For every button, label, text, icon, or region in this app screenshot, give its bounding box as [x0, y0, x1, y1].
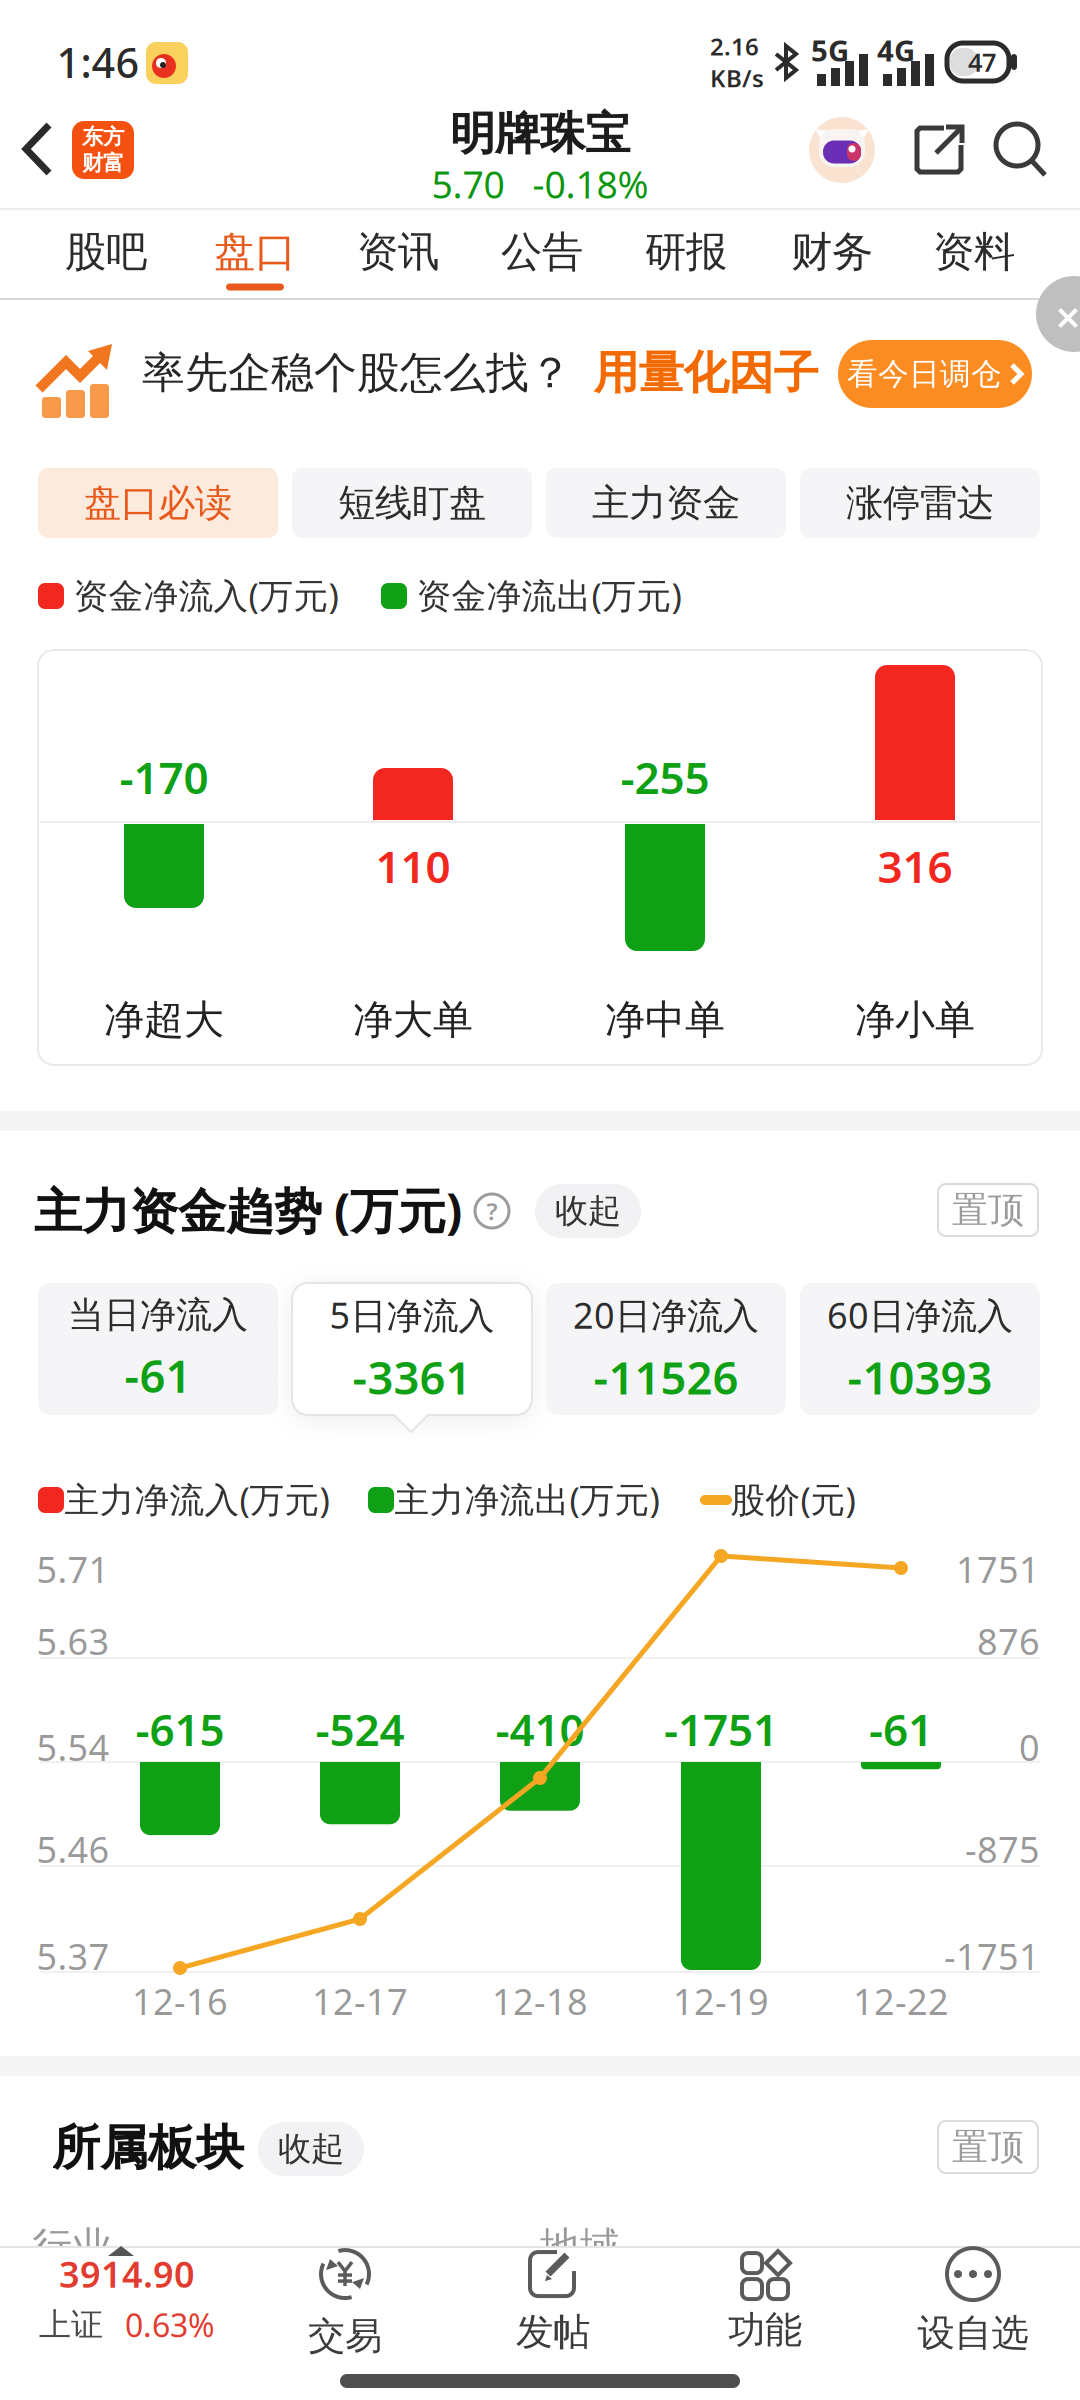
staticText: -875 — [965, 1825, 1040, 1873]
staticText: -524 — [315, 1700, 404, 1758]
staticText: -615 — [135, 1700, 224, 1758]
staticText: -11526 — [593, 1347, 738, 1407]
button[interactable]: 收起 — [258, 2122, 364, 2176]
staticText: -61 — [124, 1345, 191, 1405]
staticText: 5.71 — [36, 1545, 109, 1593]
button[interactable]: 60日净流入 — [800, 1283, 1040, 1415]
staticText: 盘口必读 — [84, 480, 232, 526]
staticText: ? — [486, 1195, 497, 1227]
staticText: 资金净流入(万元) — [73, 572, 338, 618]
staticText: 5.46 — [36, 1825, 109, 1873]
staticText: 资金净流出(万元) — [416, 572, 681, 618]
button[interactable]: 当日净流入 — [38, 1283, 278, 1415]
staticText: 看今日调仓 — [847, 355, 1002, 393]
staticText: 净大单 — [353, 995, 473, 1044]
button[interactable]: 资料 — [933, 227, 1015, 277]
staticText: 发帖 — [516, 2309, 590, 2355]
staticText: -0.18% — [532, 159, 648, 209]
staticText: 行业 — [32, 2222, 112, 2271]
button[interactable]: 股吧 — [65, 227, 147, 277]
staticText: 3914.90 — [59, 2250, 195, 2298]
staticText: -3361 — [352, 1347, 471, 1407]
staticText: 12-18 — [492, 1977, 588, 2025]
button[interactable]: 短线盯盘 — [292, 468, 532, 538]
staticText: 0 — [1019, 1723, 1040, 1771]
button[interactable]: Close — [1036, 276, 1080, 352]
staticText: 交易 — [308, 2313, 382, 2359]
staticText: 主力净流入(万元) — [64, 1476, 329, 1522]
staticText: 设自选 — [917, 2310, 1028, 2356]
button[interactable]: 盘口 — [214, 227, 296, 277]
staticText: 净小单 — [855, 995, 975, 1044]
button[interactable]: 5日净流入 — [292, 1283, 532, 1415]
staticText: -1751 — [944, 1932, 1040, 1980]
button[interactable]: 功能 — [728, 2251, 802, 2353]
staticText: 置顶 — [952, 2125, 1024, 2169]
staticText: 5.54 — [36, 1723, 109, 1771]
button[interactable]: 主力资金 — [546, 468, 786, 538]
staticText: 功能 — [728, 2307, 802, 2353]
staticText: 股价(元) — [730, 1476, 855, 1522]
staticText: 盘口 — [214, 227, 296, 277]
staticText: 公告 — [501, 227, 583, 277]
staticText: 主力净流出(万元) — [394, 1476, 659, 1522]
button[interactable]: 3914.90 — [39, 2250, 215, 2346]
staticText: 财务 — [791, 227, 873, 277]
staticText: 收起 — [278, 2128, 344, 2169]
staticText: -61 — [869, 1700, 933, 1758]
staticText: 60日净流入 — [827, 1291, 1013, 1339]
button[interactable]: 涨停雷达 — [800, 468, 1040, 538]
staticText: 收起 — [555, 1190, 621, 1231]
staticText: 2.16 KB/s — [710, 30, 764, 94]
staticText: 5G — [811, 30, 849, 69]
staticText: 股吧 — [65, 227, 147, 277]
staticText: 上证 — [39, 2305, 103, 2345]
staticText: 47 — [968, 45, 996, 79]
staticText: -10393 — [847, 1347, 992, 1407]
button[interactable]: 交易 — [308, 2245, 382, 2359]
staticText: 净超大 — [104, 995, 224, 1044]
button[interactable]: Share — [914, 125, 964, 175]
staticText: 12-17 — [312, 1977, 408, 2025]
button[interactable]: 设自选 — [917, 2248, 1028, 2356]
button[interactable]: 发帖 — [516, 2249, 590, 2355]
staticText: 财富 — [82, 150, 124, 176]
button[interactable]: 率先企稳个股怎么找？ — [0, 300, 1080, 450]
staticText: -170 — [119, 748, 208, 806]
button[interactable]: 财务 — [791, 227, 873, 277]
staticText: 4G — [877, 30, 915, 69]
staticText: 876 — [977, 1617, 1040, 1665]
staticText: 净中单 — [605, 995, 725, 1044]
staticText: -410 — [495, 1700, 584, 1758]
staticText: 12-19 — [673, 1977, 769, 2025]
button[interactable]: Back — [21, 121, 55, 177]
staticText: 所属板块 — [52, 2118, 244, 2177]
staticText: -1751 — [664, 1700, 778, 1758]
staticText: 5.63 — [36, 1617, 109, 1665]
staticText: -255 — [620, 748, 709, 806]
button[interactable]: 公告 — [501, 227, 583, 277]
button[interactable]: 收起 — [535, 1184, 641, 1238]
button[interactable]: Search — [993, 121, 1049, 179]
button[interactable]: 置顶 — [938, 1184, 1038, 1236]
staticText: 资讯 — [357, 227, 439, 277]
button[interactable]: 助手 — [809, 117, 875, 183]
button[interactable]: 东方财富 — [72, 121, 134, 179]
staticText: 5日净流入 — [329, 1291, 494, 1339]
staticText: 研报 — [645, 227, 727, 277]
button[interactable]: 盘口必读 — [38, 468, 278, 538]
staticText: 12-22 — [853, 1977, 949, 2025]
staticText: 5.37 — [36, 1932, 109, 1980]
staticText: 明牌珠宝 — [450, 106, 630, 162]
staticText: 主力资金趋势 (万元) — [34, 1178, 462, 1242]
button[interactable]: 研报 — [645, 227, 727, 277]
button[interactable]: 20日净流入 — [546, 1283, 786, 1415]
staticText: 316 — [877, 837, 952, 895]
staticText: 20日净流入 — [573, 1291, 759, 1339]
button[interactable]: 资讯 — [357, 227, 439, 277]
staticText: 涨停雷达 — [846, 480, 994, 526]
button[interactable]: 置顶 — [938, 2121, 1038, 2173]
staticText: 用量化因子 — [593, 345, 818, 401]
staticText: 地域 — [540, 2222, 620, 2271]
staticText: 0.63% — [125, 2304, 215, 2346]
